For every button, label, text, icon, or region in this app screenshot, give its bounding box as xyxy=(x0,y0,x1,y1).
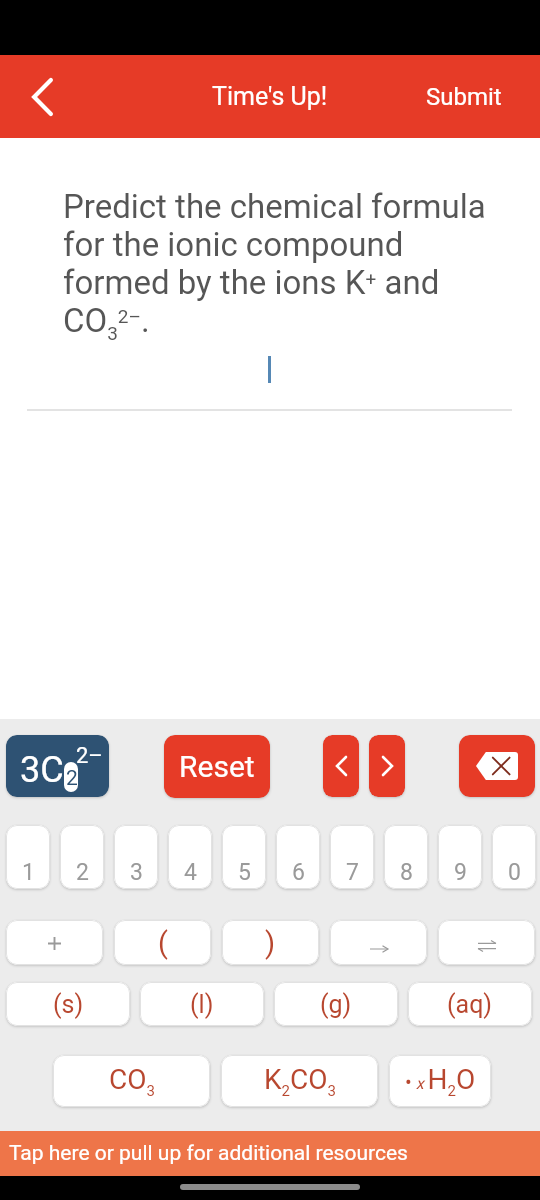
staticText: (s) xyxy=(53,990,84,1019)
button[interactable]: 2 xyxy=(60,825,104,889)
button[interactable]: Next xyxy=(369,735,405,797)
staticText: CO32–. xyxy=(63,301,150,345)
staticText: (l) xyxy=(190,990,214,1019)
staticText: 8 xyxy=(400,859,413,886)
staticText: Submit xyxy=(426,83,502,111)
staticText: 9 xyxy=(454,859,467,886)
button[interactable]: 5 xyxy=(222,825,266,889)
staticText: Time's Up! xyxy=(212,82,328,111)
staticText: for the ionic compound xyxy=(63,225,404,264)
staticText: 2 xyxy=(66,766,78,791)
staticText: 3 xyxy=(130,859,143,886)
button[interactable]: Submit xyxy=(402,55,540,138)
staticText: (aq) xyxy=(447,990,493,1019)
staticText: 0 xyxy=(508,859,521,886)
button[interactable] xyxy=(438,920,535,965)
button[interactable]: Tap here or pull up for additional resou… xyxy=(0,1131,540,1176)
staticText: ) xyxy=(265,926,276,960)
button[interactable]: 3C xyxy=(6,735,109,797)
staticText: formed by the ions K+ and xyxy=(63,263,440,302)
button[interactable] xyxy=(330,920,427,965)
button[interactable]: Back xyxy=(0,55,82,138)
button[interactable]: 0 xyxy=(492,825,536,889)
staticText: 3C xyxy=(20,749,64,791)
staticText: 2 xyxy=(76,859,89,886)
staticText: ( xyxy=(158,926,168,960)
staticText: 4 xyxy=(184,859,197,886)
button[interactable]: 8 xyxy=(384,825,428,889)
button[interactable]: K2CO3 xyxy=(221,1055,378,1107)
button[interactable]: (g) xyxy=(274,982,398,1026)
staticText: (g) xyxy=(320,990,352,1019)
staticText: Predict the chemical formula xyxy=(63,187,486,226)
button[interactable]: Previous xyxy=(323,735,359,797)
button[interactable]: 3 xyxy=(114,825,158,889)
staticText: 5 xyxy=(238,859,251,886)
button[interactable]: Reset xyxy=(164,735,270,798)
staticText: 6 xyxy=(292,859,305,886)
staticText: CO3 xyxy=(109,1063,155,1100)
button[interactable]: CO3 xyxy=(53,1055,210,1107)
button[interactable]: ( xyxy=(114,920,211,965)
button[interactable]: Delete xyxy=(459,735,535,797)
staticText: 1 xyxy=(22,859,35,886)
button[interactable]: 4 xyxy=(168,825,212,889)
button[interactable]: ) xyxy=(222,920,319,965)
button[interactable]: 1 xyxy=(6,825,50,889)
button[interactable]: (s) xyxy=(6,982,130,1026)
button[interactable] xyxy=(6,920,103,965)
button[interactable]: (aq) xyxy=(408,982,532,1026)
button[interactable]: 9 xyxy=(438,825,482,889)
staticText: K2CO3 xyxy=(264,1063,336,1100)
button[interactable]: • x H2O xyxy=(389,1055,491,1107)
staticText: 2– xyxy=(76,743,103,769)
button[interactable]: 6 xyxy=(276,825,320,889)
staticText: Tap here or pull up for additional resou… xyxy=(9,1141,408,1166)
staticText: Reset xyxy=(179,749,255,784)
staticText: • x H2O xyxy=(405,1063,476,1100)
button[interactable]: 7 xyxy=(330,825,374,889)
button[interactable]: (l) xyxy=(140,982,264,1026)
staticText: 7 xyxy=(346,859,359,886)
